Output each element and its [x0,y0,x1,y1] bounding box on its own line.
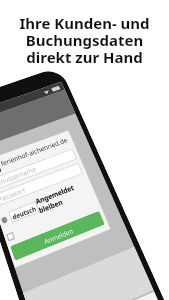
staticText: deutsch [11,204,37,221]
staticText: Ihre Kunden- und Buchungsdaten direkt zu… [19,13,150,67]
staticText: ferienhof-aichenried.de [0,136,69,168]
staticText: Anmelden [43,226,75,246]
button[interactable]: Anmelden [10,211,105,261]
staticText: Benutzername [0,165,38,189]
staticText: Passwort [0,185,27,205]
staticText: Angemeldet bleiben [34,178,92,216]
